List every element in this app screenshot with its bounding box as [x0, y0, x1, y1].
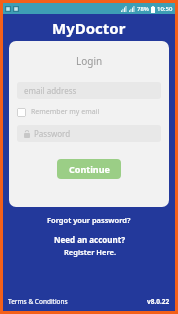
staticText: Login	[76, 54, 103, 68]
button[interactable]: Password	[17, 125, 161, 142]
staticText: MyDoctor	[52, 18, 126, 38]
staticText: Password	[34, 128, 71, 139]
staticText: Need an account?	[54, 234, 125, 245]
staticText: Register Here.	[64, 247, 116, 257]
staticText: email address	[24, 85, 77, 96]
button[interactable]: Need an account?	[3, 234, 175, 257]
button[interactable]: Remember my email	[17, 107, 161, 117]
staticText: Remember my email	[31, 107, 100, 117]
button[interactable]: email address	[17, 82, 161, 99]
other: Password	[24, 130, 30, 138]
staticText: Continue	[69, 163, 110, 175]
staticText: Forgot your password?	[47, 215, 131, 225]
staticText: v8.0.22	[147, 297, 170, 306]
staticText: 78%	[137, 5, 149, 13]
staticText: 10:50	[157, 5, 173, 13]
button[interactable]: Continue	[57, 159, 121, 179]
button[interactable]: Terms & Conditions	[8, 297, 68, 306]
button[interactable]: Forgot your password?	[3, 215, 175, 225]
